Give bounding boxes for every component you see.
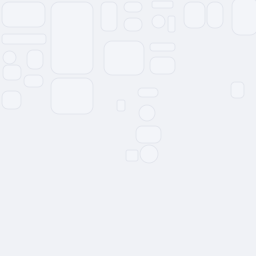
button[interactable]: Label	[152, 1, 173, 8]
button[interactable]: Marker	[168, 16, 175, 32]
button[interactable]: Marker	[126, 150, 138, 161]
button[interactable]: Marker	[117, 100, 125, 111]
button[interactable]: Badge	[139, 105, 155, 121]
button[interactable]: Subtitle	[2, 34, 46, 44]
button[interactable]: Tile	[3, 65, 21, 80]
button[interactable]: Tile	[27, 50, 43, 69]
button[interactable]: Tag	[138, 88, 158, 97]
button[interactable]: Marker	[231, 82, 244, 98]
button[interactable]: Panel	[207, 2, 223, 28]
button[interactable]: Tile	[2, 91, 21, 109]
button[interactable]: Chip	[124, 18, 142, 31]
button[interactable]: Chip	[124, 2, 142, 12]
button[interactable]: Badge	[140, 145, 158, 163]
button[interactable]: Chip	[136, 126, 161, 143]
button[interactable]: Chip	[150, 57, 175, 74]
button[interactable]: Avatar	[3, 51, 16, 64]
button[interactable]: Panel	[101, 2, 117, 31]
button[interactable]: Badge	[152, 15, 165, 28]
button[interactable]: Tag	[24, 75, 43, 87]
button[interactable]: Label	[150, 43, 175, 51]
button[interactable]: Panel	[184, 2, 205, 28]
